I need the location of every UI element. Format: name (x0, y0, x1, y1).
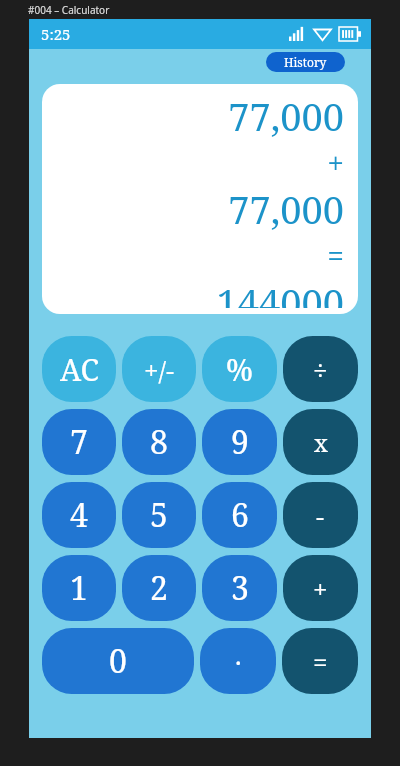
button[interactable]: 5 (122, 482, 196, 548)
button[interactable]: + (283, 555, 358, 621)
button[interactable]: 7 (42, 409, 116, 475)
staticText: History (284, 54, 327, 70)
staticText: 5:25 (41, 24, 71, 44)
button[interactable]: 9 (202, 409, 277, 475)
button[interactable]: = (282, 628, 358, 694)
button[interactable]: 4 (42, 482, 116, 548)
button[interactable]: History (266, 52, 345, 72)
staticText: + (313, 571, 328, 606)
staticText: 9 (231, 420, 249, 464)
button[interactable]: 1 (42, 555, 116, 621)
staticText: 144000 (216, 276, 344, 308)
staticText: · (235, 644, 242, 679)
staticText: AC (60, 349, 99, 390)
staticText: % (226, 349, 253, 390)
staticText: 3 (231, 566, 249, 610)
button[interactable]: 8 (122, 409, 196, 475)
staticText: 0 (109, 639, 127, 683)
staticText: 2 (150, 566, 168, 610)
button[interactable]: x (283, 409, 358, 475)
staticText: 77,000 (228, 90, 344, 142)
button[interactable]: AC (42, 336, 116, 402)
button[interactable]: 0 (42, 628, 194, 694)
staticText: 77,000 (228, 183, 344, 235)
staticText: +/- (144, 352, 175, 387)
button[interactable]: 6 (202, 482, 277, 548)
staticText: #004 – Calculator (28, 3, 110, 17)
button[interactable]: 2 (122, 555, 196, 621)
staticText: x (314, 426, 328, 459)
staticText: + (327, 142, 344, 183)
staticText: ÷ (313, 352, 328, 387)
button[interactable]: 3 (202, 555, 277, 621)
button[interactable]: +/- (122, 336, 196, 402)
staticText: 8 (150, 420, 168, 464)
staticText: 6 (231, 493, 249, 537)
staticText: 1 (70, 566, 88, 610)
staticText: - (316, 498, 325, 533)
staticText: = (313, 644, 328, 679)
button[interactable]: % (202, 336, 277, 402)
button[interactable]: · (200, 628, 276, 694)
button[interactable]: - (283, 482, 358, 548)
button[interactable]: ÷ (283, 336, 358, 402)
staticText: 7 (70, 420, 88, 464)
staticText: = (327, 235, 344, 276)
staticText: 5 (150, 493, 168, 537)
staticText: 4 (70, 493, 88, 537)
